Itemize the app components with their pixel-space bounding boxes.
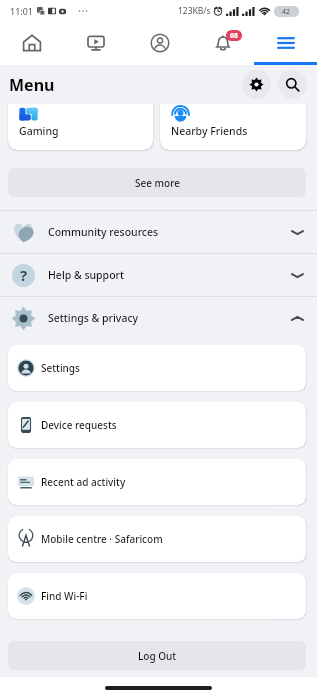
staticText: 123KB/s	[178, 5, 211, 17]
staticText: 42	[282, 7, 291, 17]
staticText: Menu	[9, 74, 55, 96]
button[interactable]: Device requests	[8, 402, 306, 448]
button[interactable]: ?	[0, 254, 317, 296]
staticText: Community resources	[48, 225, 291, 239]
staticText: Recent ad activity	[41, 475, 126, 489]
staticText: Nearby Friends	[171, 124, 248, 138]
button[interactable]: Menu	[254, 22, 317, 65]
button[interactable]: Nearby Friends	[160, 96, 306, 150]
staticText: Find Wi-Fi	[41, 589, 88, 603]
button[interactable]: Settings	[242, 70, 271, 99]
staticText: See more	[135, 176, 180, 190]
button[interactable]: Video	[64, 22, 128, 65]
button[interactable]: Log Out	[8, 641, 306, 670]
staticText: Settings	[41, 361, 80, 375]
staticText: Help & support	[48, 268, 291, 282]
button[interactable]: Mobile centre · Safaricom	[8, 516, 306, 562]
button[interactable]: Notifications	[191, 22, 254, 65]
staticText: Log Out	[138, 649, 177, 663]
button[interactable]: Community resources	[0, 211, 317, 253]
staticText: Mobile centre · Safaricom	[41, 532, 163, 546]
button[interactable]: Find Wi-Fi	[8, 573, 306, 619]
button[interactable]: Recent ad activity	[8, 459, 306, 505]
button[interactable]: Gaming	[8, 96, 153, 150]
staticText: Settings & privacy	[48, 311, 291, 325]
button[interactable]: Search	[278, 70, 307, 99]
staticText: 11:01	[10, 5, 34, 17]
button[interactable]: Settings	[8, 345, 306, 391]
staticText: 68	[230, 31, 239, 41]
staticText: Device requests	[41, 418, 117, 432]
staticText: Gaming	[19, 124, 59, 138]
button[interactable]: Profile	[128, 22, 191, 65]
button[interactable]: Settings & privacy	[0, 297, 317, 339]
button[interactable]: See more	[8, 168, 306, 197]
button[interactable]: Home	[0, 22, 64, 65]
staticText: ?	[20, 265, 28, 285]
